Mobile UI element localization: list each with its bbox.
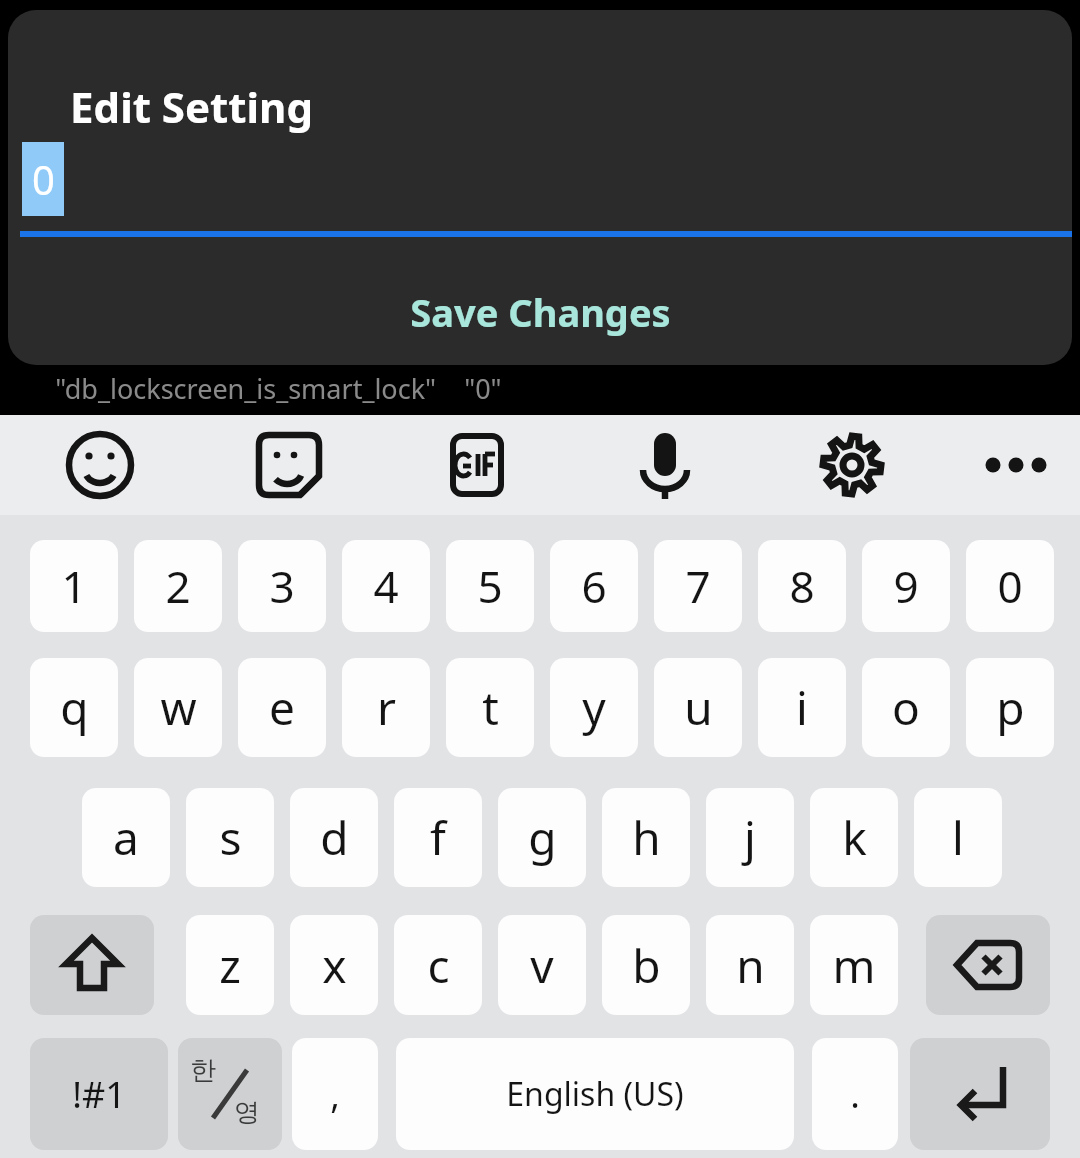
button[interactable]: Settings [806,419,898,511]
button[interactable]: 3 [238,540,326,632]
button[interactable]: Backspace [926,915,1050,1015]
button[interactable]: Enter [910,1038,1050,1150]
staticText: , [330,1070,340,1119]
button[interactable]: l [914,788,1002,887]
staticText: 7 [685,556,711,616]
button[interactable]: p [966,658,1054,757]
staticText: c [427,934,450,997]
staticText: y [582,676,606,739]
button[interactable]: h [602,788,690,887]
button[interactable]: w [134,658,222,757]
button[interactable]: 4 [342,540,430,632]
staticText: 6 [581,556,607,616]
button[interactable]: More options [970,419,1062,511]
staticText: "db_lockscreen_is_smart_lock" "0" [55,370,502,407]
button[interactable]: !#1 [30,1038,168,1150]
staticText: u [684,676,713,739]
button[interactable]: 7 [654,540,742,632]
staticText: v [530,934,554,997]
staticText: 3 [269,556,295,616]
staticText: 4 [373,556,399,616]
staticText: r [377,676,396,739]
button[interactable]: GIF [431,419,523,511]
button[interactable]: m [810,915,898,1015]
button[interactable]: i [758,658,846,757]
staticText: s [219,806,242,869]
staticText: 5 [477,556,503,616]
button[interactable]: u [654,658,742,757]
button[interactable]: z [186,915,274,1015]
button[interactable]: x [290,915,378,1015]
staticText: d [320,806,349,869]
button[interactable]: . [812,1038,898,1150]
staticText: n [736,934,765,997]
staticText: 0 [32,152,55,206]
staticText: b [632,934,661,997]
staticText: x [322,934,347,997]
button[interactable]: r [342,658,430,757]
button[interactable]: 0 [966,540,1054,632]
button[interactable]: t [446,658,534,757]
button[interactable]: d [290,788,378,887]
button[interactable]: Emoji [54,419,146,511]
staticText: . [850,1070,860,1119]
button[interactable]: v [498,915,586,1015]
staticText: e [269,676,295,739]
staticText: i [796,676,808,739]
button[interactable]: Shift [30,915,154,1015]
staticText: t [482,676,499,739]
staticText: q [60,676,89,739]
button[interactable]: c [394,915,482,1015]
staticText: k [842,806,867,869]
staticText: 한 [190,1054,216,1087]
button[interactable]: j [706,788,794,887]
button[interactable]: Stickers [243,419,335,511]
staticText: 영 [234,1096,260,1129]
button[interactable]: g [498,788,586,887]
button[interactable]: f [394,788,482,887]
staticText: 1 [61,556,87,616]
button[interactable]: Save Changes [8,268,1072,365]
button[interactable]: k [810,788,898,887]
button[interactable]: Voice input [619,419,711,511]
button[interactable]: n [706,915,794,1015]
button[interactable]: b [602,915,690,1015]
staticText: Edit Setting [70,78,313,135]
staticText: English (US) [506,1072,684,1116]
button[interactable]: y [550,658,638,757]
button[interactable]: English (US) [396,1038,794,1150]
staticText: o [892,676,920,739]
staticText: f [430,806,446,869]
staticText: g [528,806,557,869]
staticText: z [219,934,241,997]
staticText: l [952,806,964,869]
button[interactable]: q [30,658,118,757]
button[interactable]: 2 [134,540,222,632]
button[interactable]: 9 [862,540,950,632]
button[interactable]: a [82,788,170,887]
button[interactable]: o [862,658,950,757]
button[interactable]: , [292,1038,378,1150]
staticText: j [744,806,756,869]
staticText: 0 [997,556,1023,616]
button[interactable]: s [186,788,274,887]
button[interactable]: Korean English toggle [178,1038,282,1150]
staticText: Save Changes [410,286,671,338]
staticText: m [832,934,876,997]
button[interactable]: 8 [758,540,846,632]
button[interactable]: e [238,658,326,757]
staticText: p [996,676,1025,739]
button[interactable]: 1 [30,540,118,632]
staticText: w [160,676,197,739]
staticText: 9 [893,556,919,616]
button[interactable]: 6 [550,540,638,632]
staticText: 8 [789,556,815,616]
staticText: a [113,806,139,869]
button[interactable]: 5 [446,540,534,632]
staticText: h [632,806,661,869]
staticText: 2 [165,556,191,616]
staticText: !#1 [72,1070,126,1119]
